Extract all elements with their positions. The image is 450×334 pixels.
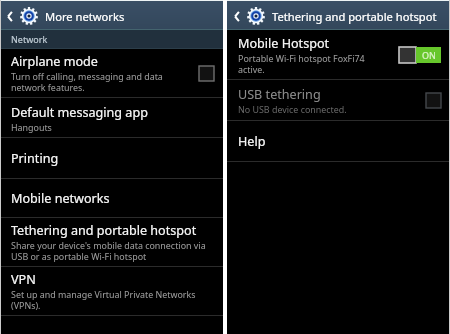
- staticText: Mobile Hotspot: [238, 35, 330, 52]
- button[interactable]: Airplane mode: [199, 66, 214, 81]
- staticText: Hangouts: [11, 121, 52, 133]
- button[interactable]: Mobile Hotspot on: [399, 47, 441, 63]
- staticText: Airplane mode: [11, 53, 98, 70]
- button[interactable]: Mobile networks: [0, 179, 223, 218]
- staticText: Share your device's mobile data connecti…: [11, 239, 206, 263]
- button[interactable]: Default messaging app: [0, 98, 223, 138]
- staticText: VPN: [11, 271, 36, 288]
- button[interactable]: Back: [233, 10, 241, 23]
- staticText: Set up and manage Virtual Private Networ…: [11, 288, 196, 312]
- staticText: Portable Wi-Fi hotspot FoxFi74 active.: [238, 52, 365, 76]
- button[interactable]: Help: [227, 121, 450, 162]
- button[interactable]: Tethering and portable hotspot: [0, 218, 223, 267]
- staticText: USB tethering: [238, 86, 321, 103]
- staticText: Network: [11, 33, 48, 45]
- staticText: More networks: [45, 9, 125, 24]
- button[interactable]: USB tethering: [227, 80, 450, 121]
- staticText: Printing: [11, 150, 59, 167]
- staticText: Turn off calling, messaging and data net…: [11, 70, 163, 94]
- staticText: No USB device connected.: [238, 103, 347, 115]
- staticText: Tethering and portable hotspot: [272, 9, 437, 24]
- button[interactable]: Mobile Hotspot: [227, 30, 450, 80]
- button[interactable]: Airplane mode: [0, 49, 223, 98]
- button[interactable]: VPN: [0, 267, 223, 316]
- staticText: Mobile networks: [11, 190, 110, 207]
- button[interactable]: USB tethering: [426, 93, 441, 108]
- staticText: Tethering and portable hotspot: [11, 222, 197, 239]
- button[interactable]: Back: [6, 10, 14, 23]
- staticText: Default messaging app: [11, 104, 148, 121]
- staticText: Help: [238, 133, 266, 150]
- staticText: ON: [422, 49, 436, 61]
- button[interactable]: Printing: [0, 138, 223, 179]
